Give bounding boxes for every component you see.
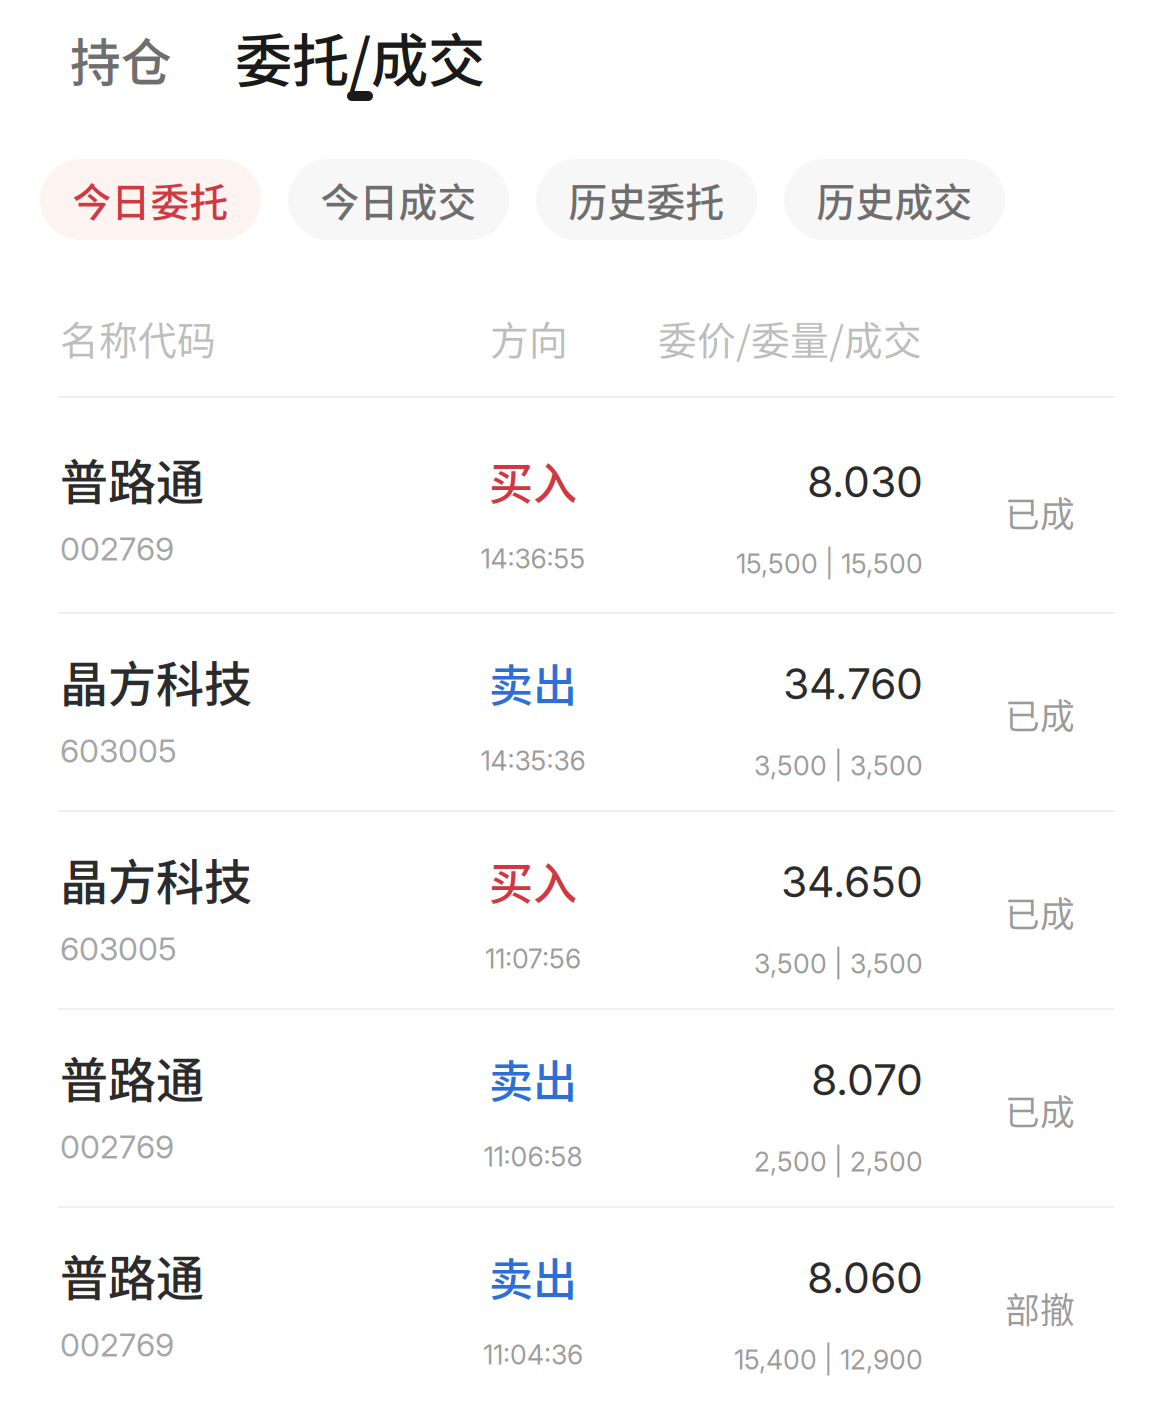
staticText: 已成 [1005,887,1075,937]
staticText: 002769 [60,529,174,568]
button[interactable]: 今日委托 [40,159,261,240]
staticText: 11:07:56 [485,943,581,975]
button[interactable]: 普路通 [0,1208,1172,1404]
button[interactable]: 持仓 [70,23,172,96]
staticText: 普路通 [60,1042,204,1111]
staticText: 11:06:58 [483,1141,582,1173]
staticText: 2,500 | 2,500 [754,1146,923,1178]
staticText: 委托/成交 [235,15,485,98]
staticText: 8.070 [811,1054,923,1106]
staticText: 普路通 [60,1240,204,1309]
staticText: 8.030 [807,456,923,508]
staticText: 今日委托 [72,171,228,227]
staticText: 持仓 [70,23,172,96]
staticText: 002769 [60,1325,174,1364]
staticText: 34.760 [783,658,923,710]
button[interactable]: 普路通 [0,398,1172,612]
staticText: 晶方科技 [60,646,252,715]
staticText: 今日成交 [320,171,476,227]
staticText: 买入 [489,849,577,913]
button[interactable]: 历史委托 [536,159,757,240]
staticText: 8.060 [807,1252,923,1304]
button[interactable]: 今日成交 [288,159,509,240]
staticText: 卖出 [489,1245,577,1309]
staticText: 买入 [489,449,577,513]
staticText: 部撤 [1005,1283,1075,1333]
staticText: 15,400 | 12,900 [734,1344,923,1376]
button[interactable]: 历史成交 [784,159,1005,240]
staticText: 历史成交 [816,171,972,227]
button[interactable]: 晶方科技 [0,812,1172,1008]
staticText: 14:35:36 [480,745,585,777]
staticText: 历史委托 [568,171,724,227]
staticText: 603005 [60,929,177,968]
button[interactable]: 晶方科技 [0,614,1172,810]
staticText: 002769 [60,1127,174,1166]
button[interactable]: 普路通 [0,1010,1172,1206]
staticText: 名称代码 [60,310,216,366]
staticText: 委价/委量/成交 [658,310,922,366]
staticText: 已成 [1005,487,1075,537]
staticText: 34.650 [781,856,923,908]
staticText: 卖出 [489,651,577,715]
staticText: 15,500 | 15,500 [736,548,923,580]
staticText: 14:36:55 [480,543,585,575]
staticText: 603005 [60,731,177,770]
staticText: 11:04:36 [483,1339,583,1371]
staticText: 已成 [1005,1085,1075,1135]
button[interactable]: 委托/成交 [235,15,485,98]
staticText: 3,500 | 3,500 [754,948,923,980]
staticText: 普路通 [60,444,204,513]
staticText: 方向 [490,310,568,366]
staticText: 已成 [1005,689,1075,739]
staticText: 晶方科技 [60,844,252,913]
staticText: 卖出 [489,1047,577,1111]
staticText: 3,500 | 3,500 [754,750,923,782]
